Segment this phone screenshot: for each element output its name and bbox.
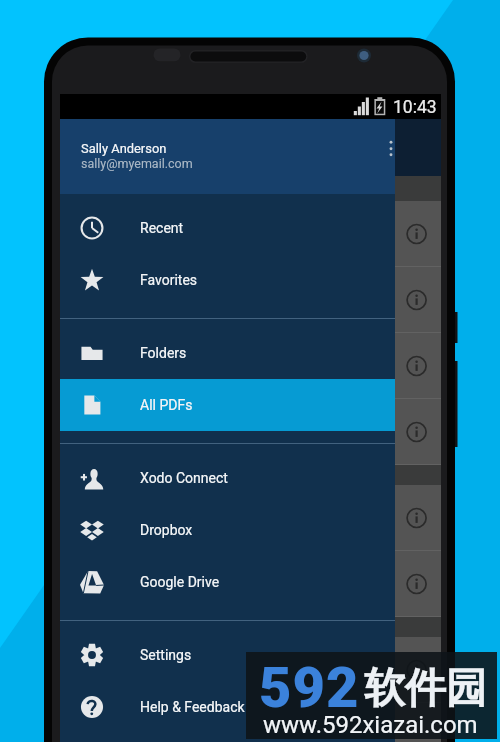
staticText: 592 <box>259 655 360 721</box>
staticText: All PDFs <box>140 397 193 413</box>
staticText: www.592xiazai.com <box>263 711 478 739</box>
button[interactable] <box>60 399 441 465</box>
staticText: Favorites <box>140 272 198 288</box>
button[interactable]: Settings <box>60 629 395 681</box>
button[interactable] <box>60 637 441 703</box>
button[interactable]: All PDFs <box>60 379 395 431</box>
button[interactable] <box>60 551 441 617</box>
button[interactable] <box>60 267 441 333</box>
button[interactable] <box>60 201 441 267</box>
button[interactable]: Recent <box>60 202 395 254</box>
staticText: Google Drive <box>140 574 220 590</box>
staticText: Settings <box>140 647 192 663</box>
button[interactable]: Help & Feedback <box>60 681 395 733</box>
button[interactable]: Sally Anderson <box>60 119 395 194</box>
staticText: Dropbox <box>140 522 193 538</box>
staticText: 10:43 <box>393 97 437 118</box>
staticText: Folders <box>140 345 187 361</box>
staticText: sally@myemail.com <box>81 156 193 171</box>
staticText: Help & Feedback <box>140 699 245 715</box>
staticText: Sally Anderson <box>81 141 167 156</box>
button[interactable]: Dropbox <box>60 504 395 556</box>
button[interactable]: More options <box>385 137 415 167</box>
button[interactable]: Google Drive <box>60 556 395 608</box>
button[interactable]: Favorites <box>60 254 395 306</box>
button[interactable]: Folders <box>60 327 395 379</box>
staticText: 软件园 <box>364 663 487 715</box>
staticText: Xodo Connect <box>140 470 228 486</box>
button[interactable] <box>60 485 441 551</box>
button[interactable] <box>60 333 441 399</box>
button[interactable]: Xodo Connect <box>60 452 395 504</box>
staticText: Recent <box>140 220 184 236</box>
